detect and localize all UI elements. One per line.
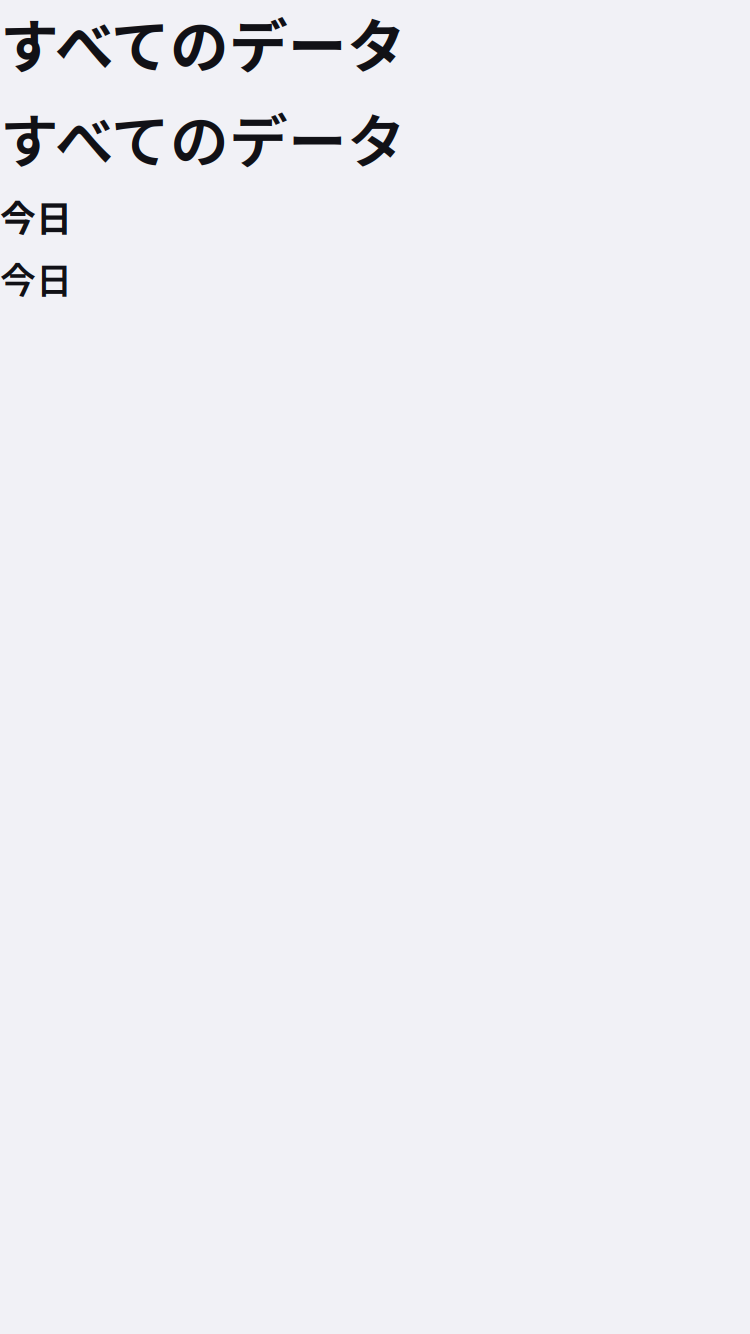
staticText: 今日 <box>0 190 72 242</box>
staticText: 今日 <box>0 252 72 304</box>
staticText: すべてのデータ <box>0 0 406 85</box>
staticText: すべてのデータ <box>0 95 406 180</box>
